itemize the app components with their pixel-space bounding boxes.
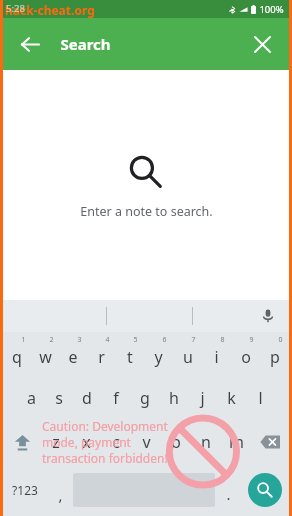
button[interactable]: l <box>246 376 275 420</box>
staticText: j <box>200 387 205 409</box>
button[interactable]: a <box>17 376 45 420</box>
button[interactable]: f <box>101 376 130 420</box>
staticText: transaction forbidden! <box>42 450 168 466</box>
staticText: g <box>140 387 150 409</box>
staticText: 100% <box>259 3 284 16</box>
staticText: o <box>241 346 251 368</box>
staticText: t <box>127 346 133 368</box>
button[interactable]: c <box>101 420 131 464</box>
staticText: n <box>201 431 211 453</box>
staticText: 0 <box>278 335 283 345</box>
staticText: 3 <box>77 335 82 345</box>
button[interactable]: 0 <box>260 332 289 376</box>
staticText: s <box>55 387 63 409</box>
staticText: 5:28 <box>6 2 25 15</box>
staticText: i <box>214 346 219 368</box>
staticText: b <box>171 431 181 453</box>
staticText: a <box>27 387 36 409</box>
button[interactable]: 9 <box>231 332 260 376</box>
button[interactable]: j <box>188 376 217 420</box>
button[interactable]: v <box>131 420 161 464</box>
staticText: k <box>227 387 236 409</box>
button[interactable]: ?123 <box>3 464 47 516</box>
staticText: 9 <box>249 335 254 345</box>
staticText: 7 <box>191 335 196 345</box>
staticText: p <box>270 346 280 368</box>
button[interactable]: Close <box>243 25 281 63</box>
staticText: 2 <box>49 335 54 345</box>
staticText: l <box>258 387 263 409</box>
staticText: . <box>226 484 231 504</box>
button[interactable]: 3 <box>59 332 87 376</box>
button[interactable]: g <box>130 376 159 420</box>
button[interactable]: 7 <box>173 332 202 376</box>
staticText: d <box>82 387 92 409</box>
button[interactable]: s <box>45 376 73 420</box>
staticText: e <box>68 346 78 368</box>
staticText: 8 <box>220 335 225 345</box>
button[interactable]: x <box>71 420 101 464</box>
button[interactable]: 4 <box>87 332 115 376</box>
staticText: Search <box>60 34 111 54</box>
staticText: z <box>52 431 60 453</box>
button[interactable]: h <box>159 376 188 420</box>
staticText: , <box>58 485 63 505</box>
staticText: 4 <box>105 335 110 345</box>
staticText: v <box>142 431 151 453</box>
button[interactable]: d <box>73 376 101 420</box>
button[interactable]: 1 <box>3 332 31 376</box>
staticText: m <box>229 431 244 453</box>
button[interactable]: , <box>47 464 73 516</box>
staticText: c <box>112 431 120 453</box>
button[interactable]: m <box>221 420 251 464</box>
button[interactable]: 5 <box>115 332 144 376</box>
staticText: 6 <box>162 335 167 345</box>
button[interactable]: 6 <box>144 332 173 376</box>
staticText: h <box>169 387 179 409</box>
button[interactable]: Back <box>11 25 49 63</box>
button[interactable]: . <box>215 464 241 516</box>
button[interactable]: n <box>191 420 221 464</box>
staticText: u <box>183 346 193 368</box>
button[interactable]: Backspace <box>251 420 289 464</box>
staticText: q <box>12 346 22 368</box>
staticText: Caution: Development <box>42 418 168 434</box>
staticText: w <box>39 346 52 368</box>
staticText: hack-cheat.org <box>5 2 95 18</box>
staticText: 5 <box>133 335 138 345</box>
button[interactable]: Search <box>241 464 289 516</box>
staticText: 1 <box>21 335 26 345</box>
button[interactable]: b <box>161 420 191 464</box>
staticText: x <box>82 431 91 453</box>
button[interactable]: k <box>217 376 246 420</box>
button[interactable]: Voice input <box>255 303 281 329</box>
staticText: y <box>154 346 163 368</box>
button[interactable]: 8 <box>202 332 231 376</box>
button[interactable]: Space <box>73 473 215 507</box>
staticText: ?123 <box>12 482 38 498</box>
staticText: mode, payment <box>42 434 131 450</box>
staticText: f <box>113 387 119 409</box>
button[interactable]: 2 <box>31 332 59 376</box>
staticText: Enter a note to search. <box>80 203 213 220</box>
button[interactable]: z <box>41 420 71 464</box>
button[interactable]: Shift <box>3 420 41 464</box>
staticText: r <box>98 346 105 368</box>
